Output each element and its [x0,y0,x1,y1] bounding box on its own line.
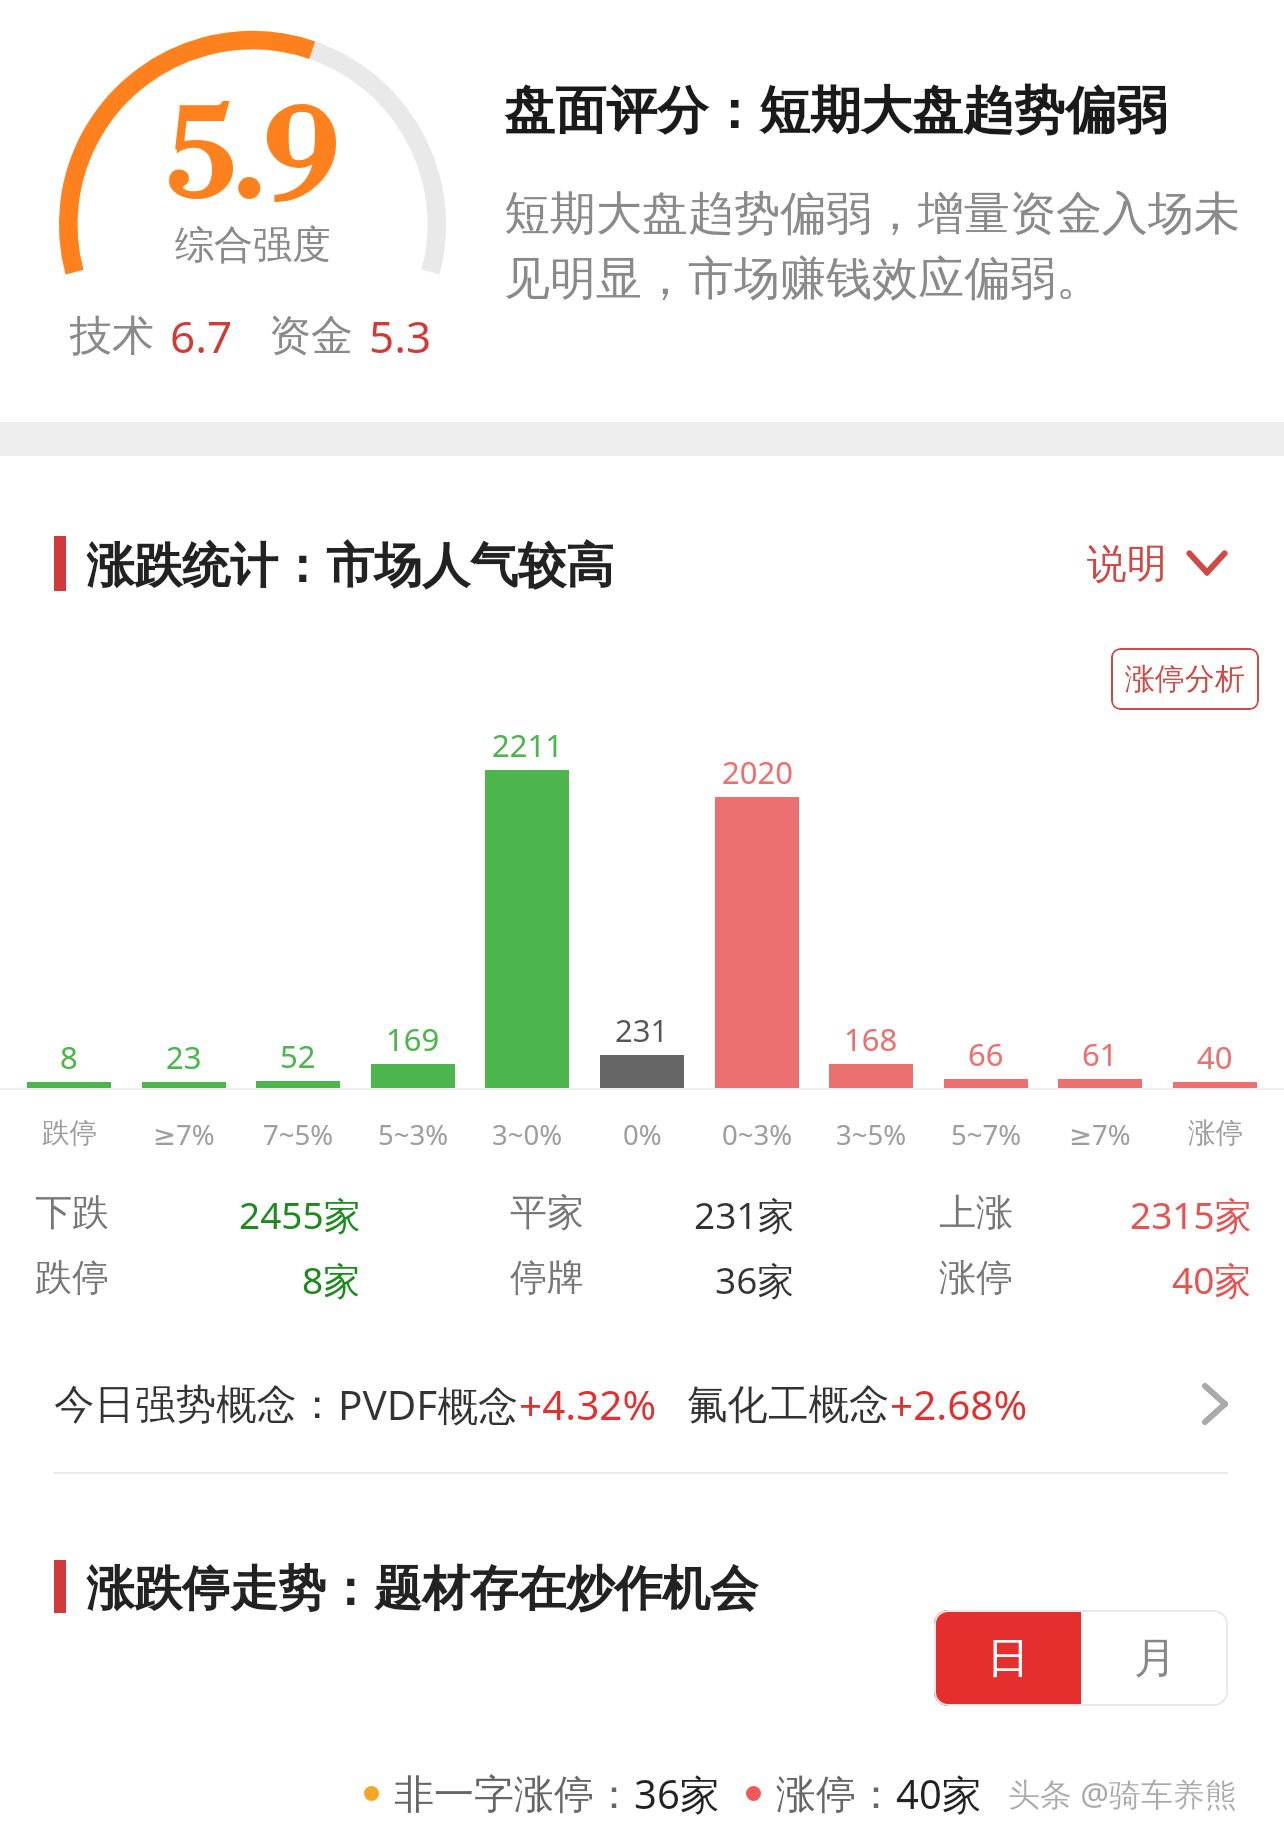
staticText: 2211 [492,724,563,766]
staticText: 23 [166,1036,202,1078]
staticText: 资金 [269,310,353,363]
staticText: +4.32% [519,1377,657,1432]
staticText: 今日强势概念： [54,1379,338,1430]
staticText: 3~0% [492,1116,563,1153]
staticText: 跌停 [35,1254,109,1300]
staticText: 日 [987,1632,1029,1685]
staticText: 综合强度 [175,220,331,269]
staticText: 下跌 [35,1189,109,1235]
staticText: 169 [386,1018,440,1060]
staticText: +2.68% [890,1377,1028,1432]
staticText: 头条 @骑车养熊 [1008,1772,1238,1816]
staticText: 月 [1134,1632,1176,1685]
staticText: 5.3 [369,306,432,366]
staticText: 涨跌统计：市场人气较高 [86,536,614,596]
staticText: 上涨 [939,1189,1013,1235]
staticText: 0% [623,1116,662,1153]
staticText: 8 [60,1036,78,1078]
staticText: 5.9 [167,81,339,236]
staticText: 短期大盘趋势偏弱，增量资金入场未见明显，市场赚钱效应偏弱。 [504,185,1260,307]
staticText: 涨停 [939,1254,1013,1300]
staticText: 2020 [722,751,793,793]
staticText: 66 [968,1033,1004,1075]
staticText: 涨跌停走势：题材存在炒作机会 [86,1559,758,1619]
staticText: 36家 [715,1254,795,1300]
staticText: 说明 [1087,538,1167,588]
other: More concepts [1202,1383,1228,1425]
staticText: 氟化工概念 [687,1379,890,1430]
staticText: 5~3% [378,1116,449,1153]
staticText: 5~7% [951,1116,1022,1153]
staticText: 6.7 [170,306,233,366]
staticText: 7~5% [263,1116,334,1153]
staticText: 盘面评分：短期大盘趋势偏弱 [504,79,1167,143]
staticText: 技术 [70,310,154,363]
staticText: 40家 [896,1766,982,1821]
staticText: 52 [280,1035,316,1077]
button[interactable]: 月 [1081,1610,1228,1706]
staticText: PVDF概念 [338,1377,519,1432]
staticText: 涨停： [776,1769,896,1819]
staticText: 涨停 [1188,1116,1243,1151]
button[interactable]: 涨停分析 [1111,648,1259,710]
staticText: 168 [844,1018,898,1060]
staticText: 3~5% [836,1116,907,1153]
staticText: 跌停 [42,1116,97,1151]
staticText: 231 [615,1009,669,1051]
staticText: 40 [1197,1036,1233,1078]
staticText: 231家 [694,1189,795,1235]
staticText: 8家 [302,1254,361,1300]
staticText: 61 [1082,1033,1118,1075]
staticText: ≥7% [153,1116,215,1153]
staticText: 停牌 [510,1254,584,1300]
staticText: 2315家 [1130,1189,1252,1235]
button[interactable]: 日 [934,1610,1081,1706]
staticText: 0~3% [722,1116,793,1153]
button[interactable]: 今日强势概念： [0,1372,1284,1436]
staticText: 40家 [1172,1254,1252,1300]
staticText: 36家 [634,1766,720,1821]
button[interactable]: 说明 [1087,538,1228,588]
staticText: 非一字涨停： [394,1769,634,1819]
staticText: 平家 [510,1189,584,1235]
staticText: 涨停分析 [1125,660,1245,698]
staticText: 2455家 [239,1189,361,1235]
staticText: ≥7% [1069,1116,1131,1153]
